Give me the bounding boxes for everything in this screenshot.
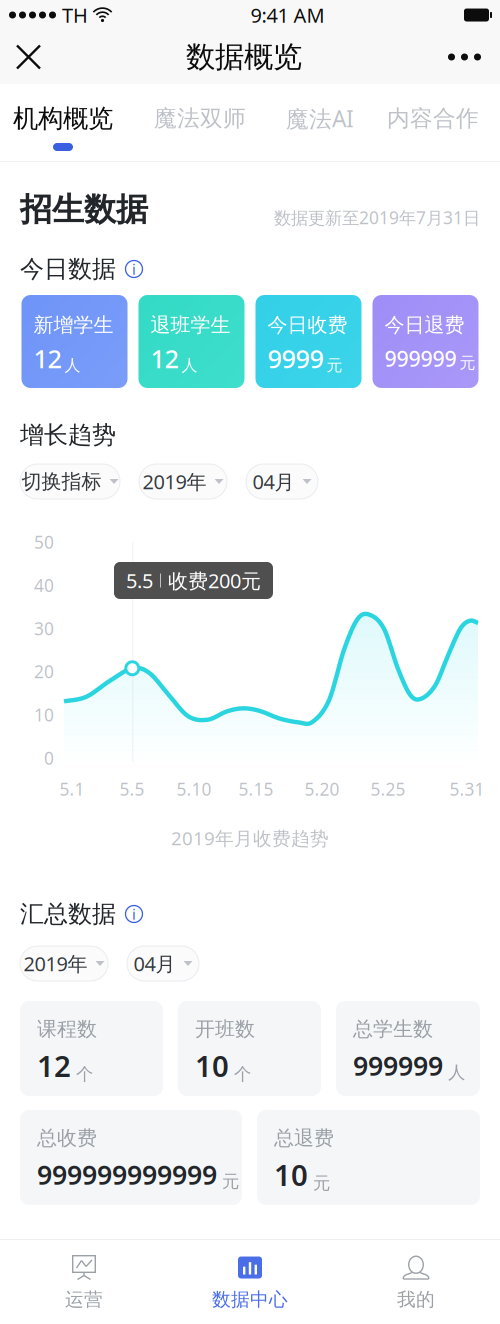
staticText: 999999 [384, 344, 456, 373]
staticText: 课程数 [37, 1017, 97, 1041]
staticText: 40 [34, 574, 54, 597]
button[interactable]: 关闭 [0, 30, 56, 84]
staticText: 运营 [65, 1288, 103, 1311]
staticText: 元 [222, 1171, 239, 1192]
staticText: 开班数 [195, 1017, 255, 1041]
button[interactable]: 运营 [1, 1240, 167, 1324]
button[interactable]: 2019年 [20, 946, 108, 981]
staticText: 12 [33, 342, 61, 375]
staticText: 5.10 [176, 777, 211, 800]
staticText: 我的 [397, 1288, 435, 1311]
staticText: 2019年 [142, 468, 206, 495]
staticText: 04月 [252, 468, 294, 495]
staticText: 30 [34, 617, 54, 640]
button[interactable]: 说明 [125, 905, 143, 923]
staticText: 今日收费 [267, 313, 347, 337]
staticText: 魔法双师 [154, 105, 246, 132]
staticText: TH [62, 2, 88, 28]
staticText: 5.20 [304, 777, 339, 800]
staticText: 魔法AI [286, 103, 354, 133]
staticText: 元 [326, 356, 342, 375]
staticText: 个 [76, 1064, 93, 1085]
staticText: 人 [181, 356, 197, 375]
staticText: 内容合作 [387, 105, 479, 132]
button[interactable]: 说明 [125, 260, 143, 278]
staticText: 数据概览 [186, 39, 302, 75]
staticText: 5.31 [449, 777, 484, 800]
staticText: 50 [34, 530, 54, 553]
staticText: 总学生数 [353, 1017, 433, 1041]
staticText: 0 [44, 746, 54, 769]
staticText: 总收费 [37, 1126, 97, 1150]
staticText: 切换指标 [21, 469, 101, 494]
staticText: 2019年 [23, 950, 87, 977]
staticText: 5.5 [126, 567, 153, 594]
staticText: 10 [195, 1046, 229, 1085]
staticText: 12 [37, 1046, 71, 1085]
staticText: 今日退费 [384, 313, 464, 337]
staticText: 20 [34, 660, 54, 683]
staticText: 人 [64, 356, 80, 375]
staticText: 退班学生 [150, 313, 230, 337]
staticText: 数据中心 [212, 1288, 288, 1311]
staticText: 个 [234, 1064, 251, 1085]
button[interactable]: 魔法双师 [126, 84, 274, 162]
staticText: 2019年月收费趋势 [171, 826, 329, 850]
staticText: 收费200元 [168, 567, 261, 594]
staticText: 新增学生 [33, 313, 113, 337]
button[interactable]: 机构概览 [0, 84, 126, 162]
staticText: 10 [274, 1155, 308, 1194]
staticText: 5.15 [238, 777, 273, 800]
button[interactable]: 我的 [333, 1240, 499, 1324]
button[interactable]: 魔法AI [274, 84, 366, 162]
staticText: 5.1 [59, 777, 84, 800]
button[interactable]: 04月 [127, 946, 199, 981]
button[interactable]: 切换指标 [20, 464, 120, 499]
button[interactable]: 数据中心 [167, 1240, 333, 1324]
staticText: 元 [313, 1173, 330, 1194]
button[interactable]: 更多 [432, 30, 500, 84]
staticText: 12 [150, 342, 178, 375]
staticText: 招生数据 [20, 190, 148, 229]
staticText: 机构概览 [13, 103, 113, 134]
staticText: 总退费 [274, 1126, 334, 1150]
staticText: 数据更新至2019年7月31日 [274, 206, 480, 229]
staticText: i [132, 259, 136, 279]
button[interactable]: 2019年 [139, 464, 227, 499]
staticText: 元 [459, 353, 475, 373]
staticText: 5.25 [370, 777, 405, 800]
staticText: 增长趋势 [20, 420, 116, 450]
staticText: 9:41 AM [250, 2, 324, 28]
button[interactable]: 04月 [246, 464, 318, 499]
staticText: 5.5 [119, 777, 144, 800]
staticText: 今日数据 [20, 254, 116, 284]
staticText: i [132, 904, 136, 924]
staticText: 10 [34, 703, 54, 726]
staticText: 汇总数据 [20, 899, 116, 929]
staticText: 人 [448, 1062, 465, 1083]
button[interactable]: 内容合作 [366, 84, 500, 162]
staticText: 999999 [353, 1048, 443, 1083]
staticText: 04月 [133, 950, 175, 977]
staticText: 999999999999 [37, 1157, 217, 1192]
staticText: 9999 [267, 342, 323, 375]
